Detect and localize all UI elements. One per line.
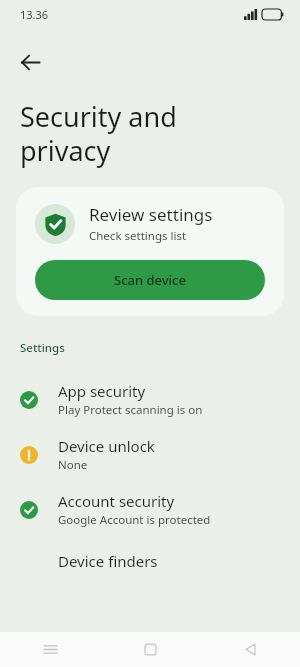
button[interactable]: Recent apps xyxy=(0,632,100,667)
button[interactable]: Account security xyxy=(0,482,300,537)
staticText: Scan device xyxy=(114,271,186,289)
staticText: None xyxy=(58,457,88,473)
staticText: Settings xyxy=(20,340,65,356)
staticText: Device unlock xyxy=(58,436,155,456)
button[interactable]: Home xyxy=(100,632,200,667)
staticText: 13.36 xyxy=(20,7,49,22)
button[interactable]: Back xyxy=(8,40,52,84)
button[interactable]: Back xyxy=(200,632,300,667)
button[interactable]: Review settings xyxy=(16,187,284,316)
staticText: Play Protect scanning is on xyxy=(58,402,203,418)
button[interactable]: Scan device xyxy=(35,260,265,300)
staticText: Device finders xyxy=(58,551,158,571)
staticText: Account security xyxy=(58,491,175,511)
button[interactable]: Device finders xyxy=(0,537,300,632)
staticText: Check settings list xyxy=(89,228,187,244)
staticText: Security and privacy xyxy=(20,98,177,169)
staticText: Google Account is protected xyxy=(58,512,211,528)
button[interactable]: App security xyxy=(0,372,300,427)
button[interactable]: Device unlock xyxy=(0,427,300,482)
staticText: Review settings xyxy=(89,203,213,226)
staticText: App security xyxy=(58,381,146,401)
